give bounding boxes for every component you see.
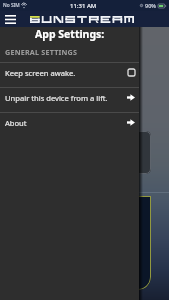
staticText: No SIM <box>3 2 20 9</box>
staticText: About <box>5 118 27 128</box>
staticText: 90% <box>145 2 156 9</box>
staticText: GENERAL SETTINGS <box>5 47 78 57</box>
staticText: 11:31 AM <box>70 2 97 10</box>
staticText: App Settings: <box>35 27 105 41</box>
button[interactable]: Sunstream <box>30 16 134 23</box>
button[interactable]: Keep screen awake. <box>0 63 139 87</box>
button[interactable]: Unpair this device from a lift. <box>0 88 139 112</box>
button[interactable]: About <box>0 113 139 137</box>
button[interactable]: Menu <box>2 11 19 27</box>
staticText: Unpair this device from a lift. <box>5 93 108 103</box>
staticText: Keep screen awake. <box>5 68 76 78</box>
